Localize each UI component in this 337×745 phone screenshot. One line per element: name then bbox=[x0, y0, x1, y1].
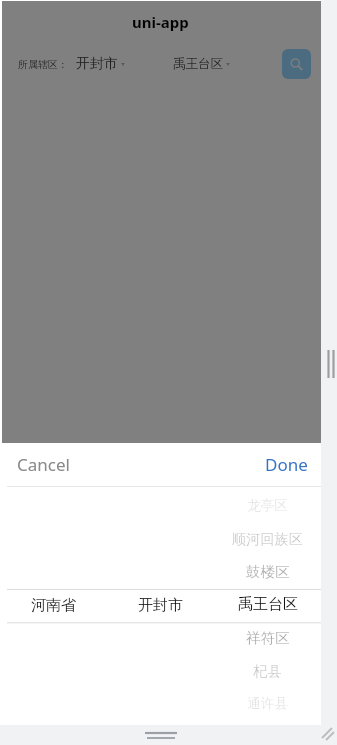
staticText: 祥符区 bbox=[246, 629, 290, 647]
button[interactable]: Cancel bbox=[17, 443, 70, 486]
staticText: 顺河回族区 bbox=[232, 530, 303, 548]
button[interactable]: 顺河回族区 bbox=[214, 522, 321, 555]
staticText: 禹王台区 bbox=[238, 595, 298, 614]
staticText: 龙亭区 bbox=[247, 497, 288, 514]
staticText: 杞县 bbox=[253, 662, 282, 680]
staticText: 通许县 bbox=[247, 695, 288, 712]
button[interactable]: Done bbox=[265, 443, 308, 486]
button[interactable]: 开封市 bbox=[107, 589, 214, 622]
button[interactable]: 禹王台区 bbox=[214, 588, 321, 621]
staticText: Done bbox=[265, 453, 308, 476]
staticText: uni-app bbox=[132, 12, 189, 32]
staticText: 鼓楼区 bbox=[246, 563, 290, 581]
button[interactable]: 龙亭区 bbox=[214, 489, 321, 522]
staticText: 禹王台区 bbox=[173, 56, 223, 72]
button[interactable]: 祥符区 bbox=[214, 621, 321, 654]
button[interactable]: 开封市 bbox=[76, 44, 125, 84]
staticText: 河南省 bbox=[31, 596, 76, 615]
button[interactable]: 禹王台区 bbox=[173, 44, 230, 84]
button[interactable]: 杞县 bbox=[214, 654, 321, 687]
button[interactable]: Search bbox=[282, 49, 311, 79]
staticText: Cancel bbox=[17, 453, 70, 476]
staticText: 所属辖区： bbox=[18, 58, 68, 71]
staticText: 开封市 bbox=[76, 55, 118, 73]
staticText: 开封市 bbox=[138, 596, 183, 615]
button[interactable]: 鼓楼区 bbox=[214, 555, 321, 588]
button[interactable]: 通许县 bbox=[214, 687, 321, 720]
button[interactable]: 河南省 bbox=[0, 589, 107, 622]
